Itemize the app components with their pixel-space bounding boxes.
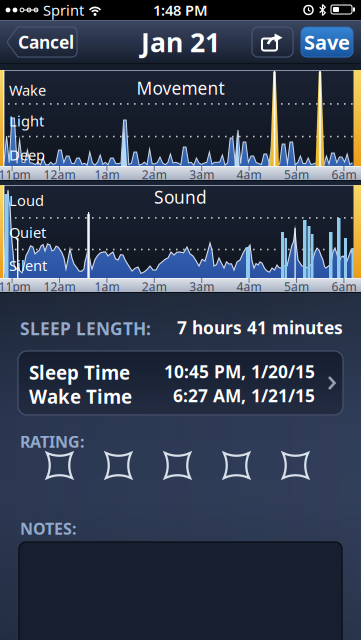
- staticText: NOTES:: [20, 518, 76, 539]
- staticText: 3am: [189, 278, 214, 294]
- staticText: 5am: [284, 166, 309, 182]
- staticText: 10:45 PM, 1/20/15: [164, 360, 315, 383]
- staticText: Movement: [136, 76, 224, 99]
- button[interactable]: Sleep Time: [18, 351, 343, 415]
- staticText: 3am: [189, 166, 214, 182]
- staticText: 5am: [284, 278, 309, 294]
- staticText: Loud: [9, 190, 44, 210]
- staticText: Wake: [9, 80, 46, 100]
- staticText: Silent: [9, 256, 47, 275]
- staticText: Sprint: [43, 0, 84, 20]
- button[interactable]: Rate 4 stars: [224, 453, 249, 478]
- staticText: Sound: [154, 185, 207, 208]
- button[interactable]: Rate 1 stars: [47, 453, 72, 478]
- staticText: 4am: [237, 166, 262, 182]
- button[interactable]: Share: [252, 27, 293, 57]
- staticText: RATING:: [20, 431, 84, 452]
- staticText: 12am: [43, 166, 75, 182]
- button[interactable]: Rate 3 stars: [165, 453, 190, 478]
- button[interactable]: Save: [301, 27, 353, 57]
- staticText: 11pm: [0, 278, 30, 294]
- staticText: 1am: [94, 166, 119, 182]
- staticText: 1:48 PM: [153, 0, 208, 20]
- staticText: Sleep Time: [29, 360, 130, 385]
- button[interactable]: Rate 5 stars: [283, 453, 308, 478]
- staticText: 2am: [142, 166, 167, 182]
- staticText: 6am: [331, 166, 356, 182]
- button[interactable]: Cancel: [7, 27, 77, 57]
- staticText: Deep: [9, 145, 45, 164]
- staticText: 6:27 AM, 1/21/15: [173, 384, 315, 407]
- staticText: Wake Time: [29, 384, 132, 409]
- staticText: Jan 21: [141, 24, 220, 60]
- staticText: 6am: [331, 278, 356, 294]
- staticText: Quiet: [9, 223, 46, 242]
- staticText: Save: [304, 29, 350, 55]
- staticText: 4am: [237, 278, 262, 294]
- staticText: 11pm: [0, 166, 30, 182]
- staticText: 2am: [142, 278, 167, 294]
- button[interactable]: Rate 2 stars: [106, 453, 131, 478]
- staticText: 1am: [94, 278, 119, 294]
- staticText: Cancel: [18, 30, 74, 53]
- staticText: 12am: [43, 278, 75, 294]
- staticText: 7 hours 41 minutes: [177, 316, 343, 339]
- staticText: SLEEP LENGTH:: [20, 317, 151, 340]
- staticText: Light: [9, 111, 44, 130]
